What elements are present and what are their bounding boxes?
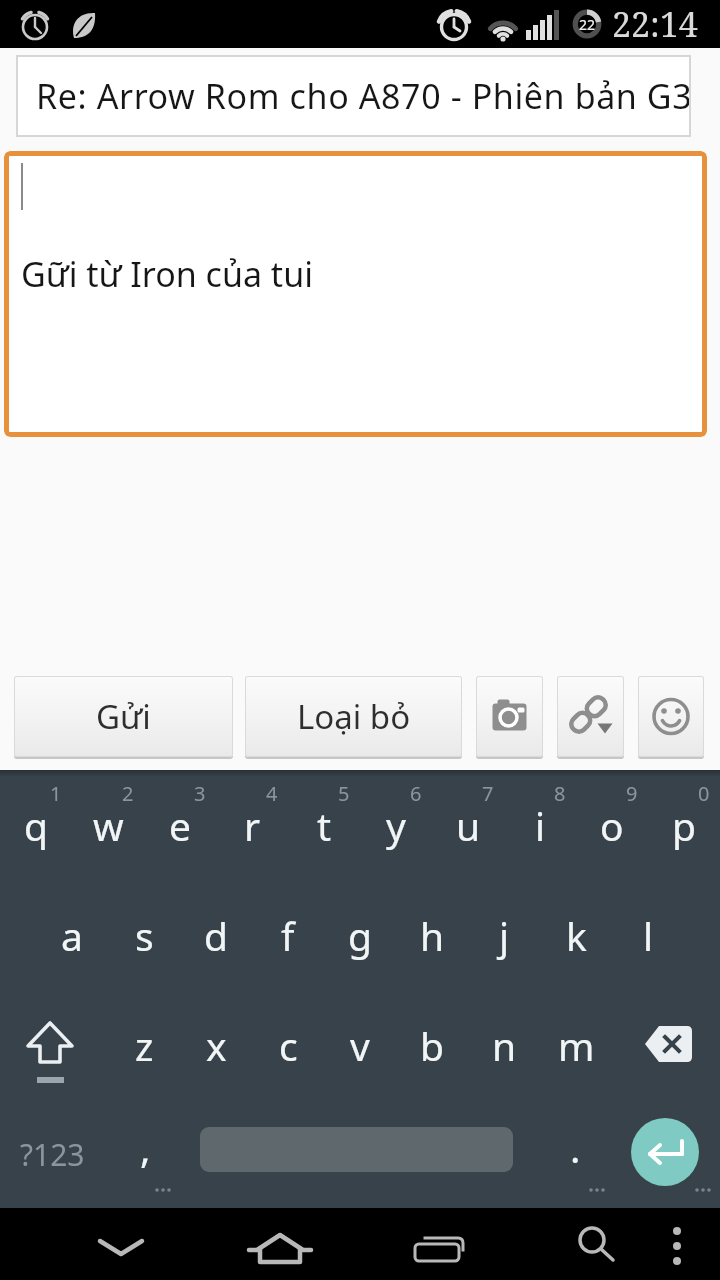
staticText: g xyxy=(348,909,372,962)
button[interactable] xyxy=(402,1208,474,1280)
button[interactable]: a xyxy=(36,880,108,990)
staticText: r xyxy=(244,799,261,852)
button[interactable]: m xyxy=(540,990,612,1100)
staticText: f xyxy=(281,909,295,962)
button[interactable] xyxy=(620,990,720,1100)
button[interactable]: e xyxy=(144,770,216,880)
button[interactable] xyxy=(655,1208,703,1280)
button[interactable]: r xyxy=(216,770,288,880)
staticText: w xyxy=(93,799,124,852)
staticText: 5 xyxy=(338,780,350,807)
staticText: j xyxy=(499,909,510,962)
staticText: a xyxy=(61,909,83,962)
staticText: o xyxy=(600,799,624,852)
button[interactable]: p xyxy=(648,770,720,880)
button[interactable]: l xyxy=(612,880,684,990)
staticText: n xyxy=(492,1019,517,1072)
staticText: c xyxy=(279,1019,298,1072)
button[interactable]: o xyxy=(576,770,648,880)
staticText: y xyxy=(386,799,406,852)
button[interactable] xyxy=(244,1208,316,1280)
staticText: q xyxy=(24,799,48,852)
staticText: i xyxy=(535,799,546,852)
staticText: x xyxy=(206,1019,227,1072)
staticText: u xyxy=(456,799,481,852)
button[interactable] xyxy=(558,1208,630,1280)
staticText: k xyxy=(566,909,587,962)
staticText: 4 xyxy=(266,780,278,807)
staticText: Gửi xyxy=(96,694,151,739)
button[interactable]: g xyxy=(324,880,396,990)
button[interactable]: , xyxy=(110,1100,180,1195)
button[interactable]: s xyxy=(108,880,180,990)
staticText: 22 xyxy=(579,15,596,34)
staticText: l xyxy=(643,909,654,962)
staticText: Gữi từ Iron của tui xyxy=(21,251,313,297)
staticText: . xyxy=(570,1121,581,1174)
button[interactable]: f xyxy=(252,880,324,990)
button[interactable]: b xyxy=(396,990,468,1100)
button[interactable]: x xyxy=(180,990,252,1100)
button[interactable]: v xyxy=(324,990,396,1100)
button[interactable]: i xyxy=(504,770,576,880)
button[interactable]: Gữi từ Iron của tui xyxy=(4,151,707,437)
staticText: 9 xyxy=(626,780,638,807)
button[interactable]: h xyxy=(396,880,468,990)
staticText: 8 xyxy=(554,780,566,807)
staticText: 1 xyxy=(50,780,62,807)
button[interactable]: ?123 xyxy=(0,1100,104,1208)
button[interactable]: Gửi xyxy=(14,676,233,757)
staticText: 7 xyxy=(482,780,494,807)
staticText: Loại bỏ xyxy=(297,694,411,739)
button[interactable] xyxy=(476,676,543,757)
button[interactable]: d xyxy=(180,880,252,990)
staticText: v xyxy=(350,1019,370,1072)
button[interactable]: Loại bỏ xyxy=(245,676,462,757)
button[interactable] xyxy=(85,1208,157,1280)
staticText: z xyxy=(135,1019,154,1072)
staticText: 6 xyxy=(410,780,422,807)
staticText: t xyxy=(317,799,332,852)
button[interactable]: Re: Arrow Rom cho A870 - Phiên bản G3 xyxy=(16,55,691,137)
staticText: b xyxy=(420,1019,444,1072)
staticText: s xyxy=(135,909,154,962)
staticText: ?123 xyxy=(20,1134,85,1175)
staticText: 3 xyxy=(194,780,206,807)
button[interactable] xyxy=(631,1118,699,1186)
button[interactable]: k xyxy=(540,880,612,990)
staticText: 0 xyxy=(698,780,710,807)
button[interactable]: u xyxy=(432,770,504,880)
button[interactable]: z xyxy=(108,990,180,1100)
staticText: d xyxy=(204,909,228,962)
button[interactable]: j xyxy=(468,880,540,990)
staticText: p xyxy=(672,799,696,852)
button[interactable]: n xyxy=(468,990,540,1100)
button[interactable] xyxy=(638,676,704,757)
staticText: m xyxy=(558,1019,595,1072)
button[interactable]: . xyxy=(540,1100,610,1195)
button[interactable]: y xyxy=(360,770,432,880)
staticText: e xyxy=(169,799,191,852)
button[interactable]: q xyxy=(0,770,72,880)
button[interactable]: t xyxy=(288,770,360,880)
staticText: h xyxy=(420,909,445,962)
staticText: Re: Arrow Rom cho A870 - Phiên bản G3 xyxy=(36,73,691,119)
button[interactable] xyxy=(0,990,100,1100)
button[interactable] xyxy=(557,676,624,757)
staticText: 2 xyxy=(122,780,134,807)
button[interactable]: w xyxy=(72,770,144,880)
staticText: 22:14 xyxy=(612,1,698,47)
staticText: , xyxy=(140,1121,151,1174)
button[interactable]: c xyxy=(252,990,324,1100)
